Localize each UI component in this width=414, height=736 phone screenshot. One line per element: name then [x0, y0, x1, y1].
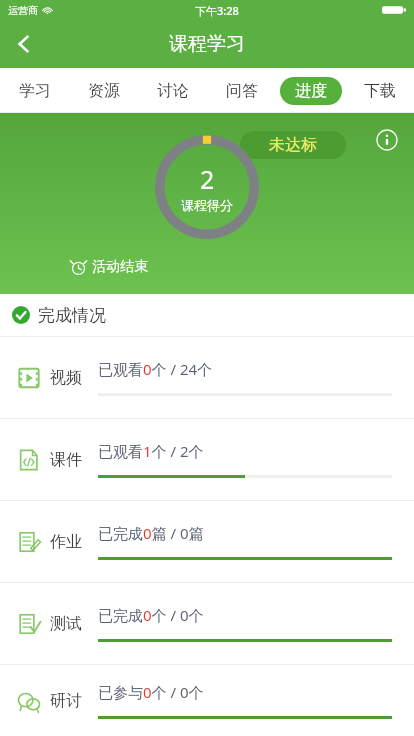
button[interactable]: 下载 — [345, 68, 414, 113]
button[interactable]: 未达标 — [240, 131, 346, 159]
staticText: 测试 — [50, 614, 82, 634]
staticText: 课程得分 — [181, 197, 233, 213]
button[interactable]: 学习 — [0, 68, 69, 113]
button[interactable]: 视频 — [0, 337, 414, 418]
button[interactable]: Info — [370, 123, 404, 157]
staticText: 已观看0个 / 24个 — [98, 359, 213, 379]
staticText: 下午3:28 — [195, 3, 239, 18]
button[interactable]: 课件 — [0, 419, 414, 500]
staticText: 问答 — [226, 81, 258, 101]
button[interactable]: 研讨 — [0, 665, 414, 736]
button[interactable]: 讨论 — [138, 68, 207, 113]
staticText: 已完成0个 / 0个 — [98, 605, 204, 625]
staticText: 研讨 — [50, 691, 82, 711]
staticText: 活动结束 — [92, 258, 148, 276]
staticText: 课程学习 — [169, 32, 245, 56]
staticText: 已参与0个 / 0个 — [98, 682, 204, 702]
staticText: 进度 — [295, 81, 327, 101]
button[interactable]: Back — [0, 20, 48, 68]
button[interactable]: 测试 — [0, 583, 414, 664]
staticText: 完成情况 — [38, 305, 106, 326]
button[interactable]: 资源 — [69, 68, 138, 113]
button[interactable]: 问答 — [207, 68, 276, 113]
staticText: 未达标 — [269, 135, 317, 155]
staticText: 资源 — [88, 81, 120, 101]
staticText: 作业 — [50, 532, 82, 552]
staticText: 课件 — [50, 450, 82, 470]
staticText: 下载 — [364, 81, 396, 101]
staticText: 已完成0篇 / 0篇 — [98, 523, 204, 543]
button[interactable]: 进度 — [276, 68, 345, 113]
staticText: 视频 — [50, 368, 82, 388]
staticText: 讨论 — [157, 81, 189, 101]
staticText: 2 — [200, 162, 215, 196]
staticText: 学习 — [19, 81, 51, 101]
staticText: 运营商 — [8, 4, 38, 17]
button[interactable]: 作业 — [0, 501, 414, 582]
staticText: 已观看1个 / 2个 — [98, 441, 204, 461]
